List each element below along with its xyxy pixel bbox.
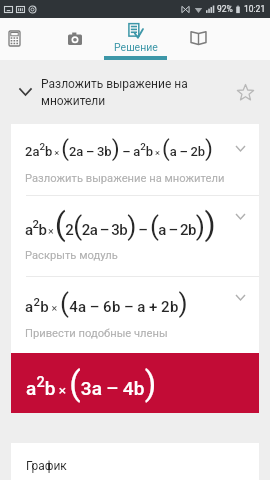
staticText: Разложить выражение на множители <box>25 172 225 185</box>
staticText: 92% <box>217 4 233 14</box>
button[interactable]: 2a2b × (2a – 3b) – a2b × (a – 2b) <box>11 124 259 195</box>
staticText: a2b × (3a – 4b) <box>26 364 157 403</box>
staticText: Разложить выражение на множители <box>41 77 234 108</box>
button[interactable]: График <box>11 443 259 480</box>
staticText: 2a2b × (2a – 3b) – a2b × (a – 2b) <box>25 135 214 162</box>
button[interactable]: Решение <box>104 18 167 60</box>
staticText: a2b × (2(2a – 3b) – (a – 2b)) <box>25 205 216 243</box>
staticText: Привести подобные члены <box>25 327 168 340</box>
button[interactable]: Collapse <box>11 78 39 106</box>
staticText: График <box>26 459 67 473</box>
button[interactable]: a2b × (3a – 4b) <box>11 353 259 413</box>
staticText: 10:21 <box>244 4 266 14</box>
button[interactable]: Camera <box>44 18 106 60</box>
staticText: a2b × (4a – 6b – a + 2b) <box>25 288 189 319</box>
staticText: Решение <box>114 41 158 53</box>
button[interactable]: a2b × (2(2a – 3b) – (a – 2b)) <box>11 196 259 276</box>
button[interactable]: Favorite <box>232 79 258 105</box>
button[interactable]: a2b × (4a – 6b – a + 2b) <box>11 277 259 353</box>
button[interactable]: Calculator <box>0 18 45 60</box>
button[interactable]: Book <box>167 18 229 60</box>
staticText: Раскрыть модуль <box>25 249 118 262</box>
